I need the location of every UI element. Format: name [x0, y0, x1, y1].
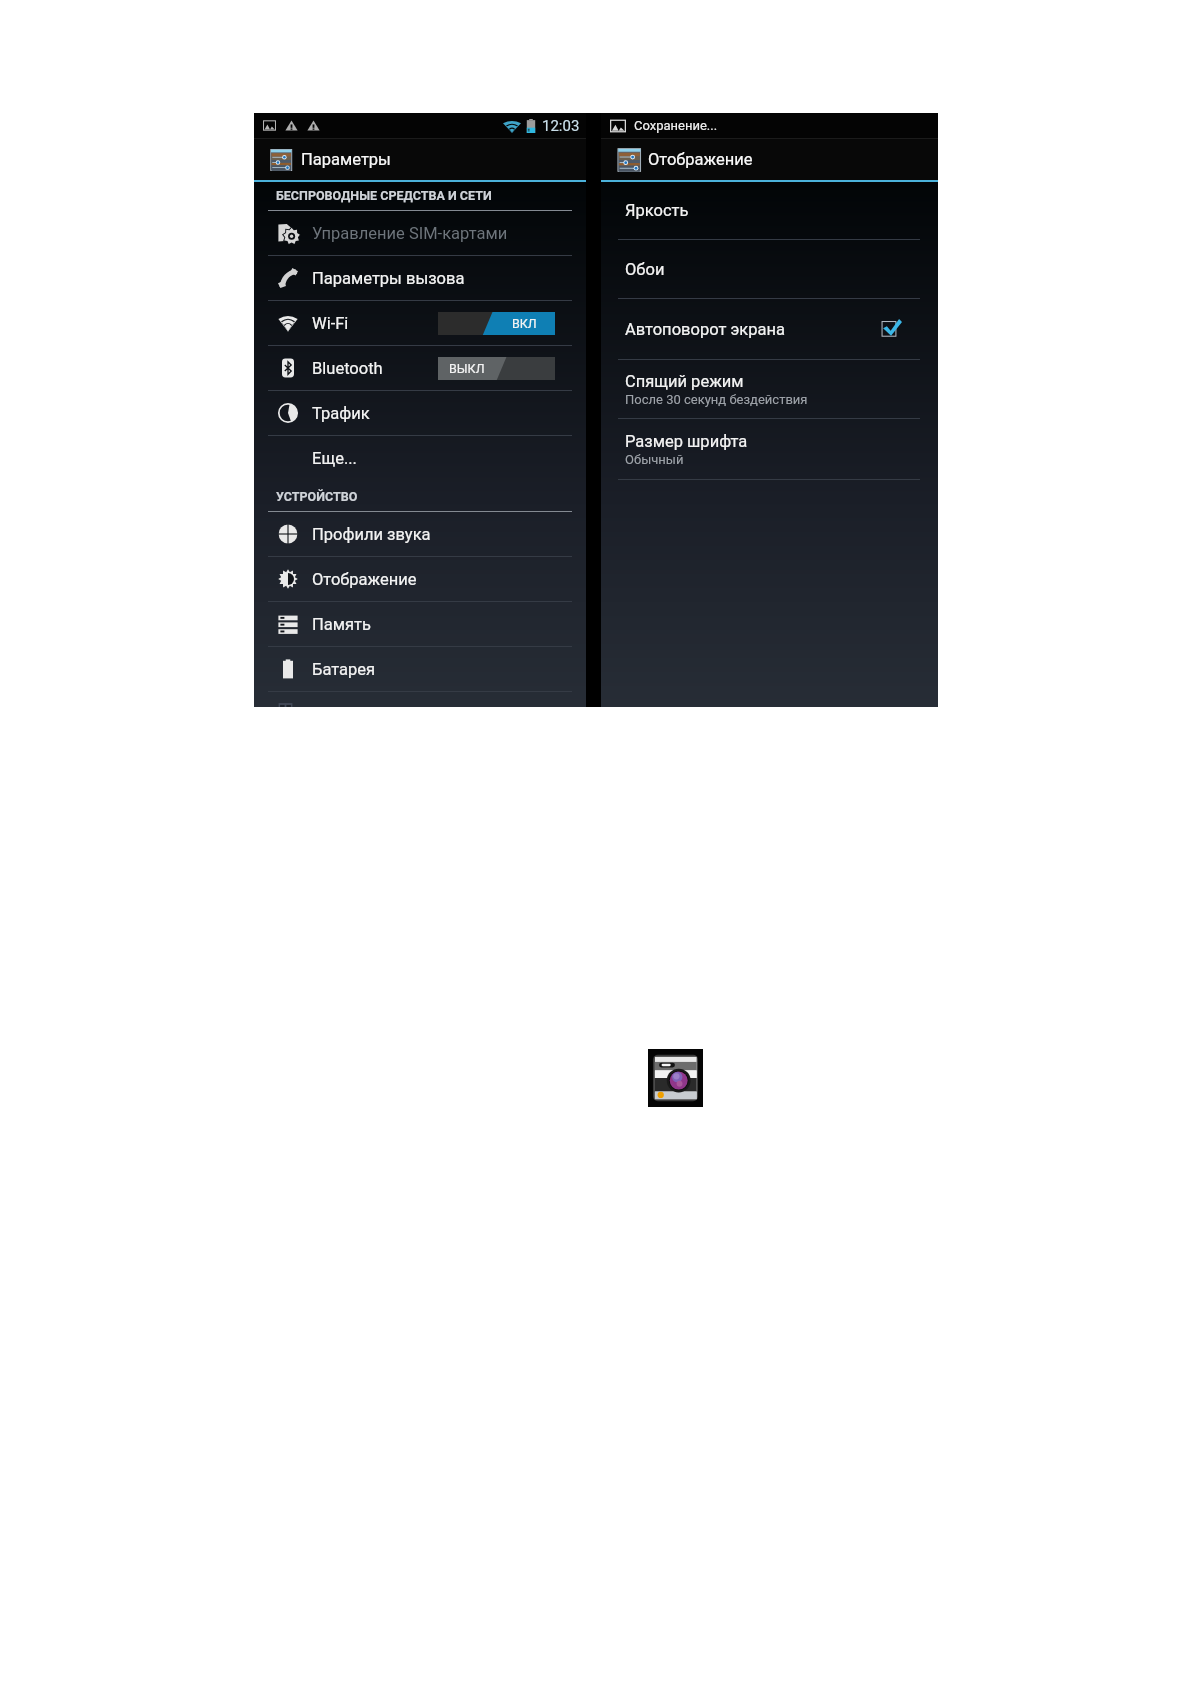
button[interactable]: Профили звука	[254, 512, 586, 556]
staticText: Параметры вызова	[312, 269, 465, 288]
staticText: Яркость	[625, 201, 689, 220]
button[interactable]: Трафик	[254, 391, 586, 435]
staticText: УСТРОЙСТВО	[276, 489, 358, 504]
button[interactable]: Отображение	[254, 557, 586, 601]
staticText: Обои	[625, 260, 665, 279]
staticText: Автоповорот экрана	[625, 320, 785, 339]
staticText: Спящий режим	[625, 372, 744, 391]
button[interactable]: Camera application	[648, 1049, 703, 1107]
button[interactable]: Off	[438, 357, 555, 380]
button[interactable]: Bluetooth	[254, 346, 586, 390]
staticText: Профили звука	[312, 525, 431, 544]
button[interactable]: Auto-rotate screen	[881, 319, 902, 340]
staticText: Размер шрифта	[625, 432, 748, 451]
button[interactable]: Автоповорот экрана	[601, 299, 938, 359]
button[interactable]: On	[438, 312, 555, 335]
staticText: Отображение	[648, 150, 753, 169]
button[interactable]: Обои	[601, 240, 938, 298]
staticText: Еще...	[312, 449, 357, 468]
button[interactable]: Батарея	[254, 647, 586, 691]
staticText: 12:03	[542, 117, 580, 135]
button[interactable]: Спящий режим	[601, 360, 938, 418]
staticText: БЕСПРОВОДНЫЕ СРЕДСТВА И СЕТИ	[276, 188, 492, 203]
button[interactable]: Wi-Fi	[254, 301, 586, 345]
button[interactable]: Память	[254, 602, 586, 646]
button[interactable]: Отображение	[601, 139, 938, 180]
staticText: Память	[312, 615, 371, 634]
button[interactable]: Яркость	[601, 182, 938, 239]
button[interactable]: Параметры вызова	[254, 256, 586, 300]
staticText: Wi-Fi	[312, 314, 349, 333]
staticText: После 30 секунд бездействия	[625, 392, 808, 407]
button[interactable]: Параметры	[254, 139, 586, 180]
button[interactable]: Управление SIM-картами	[254, 211, 586, 255]
button[interactable]: Еще...	[254, 436, 586, 480]
staticText: ВКЛ	[512, 316, 537, 331]
staticText: Bluetooth	[312, 359, 383, 378]
staticText: Обычный	[625, 452, 684, 467]
staticText: Сохранение...	[634, 118, 718, 133]
staticText: Трафик	[312, 404, 370, 423]
staticText: Управление SIM-картами	[312, 224, 508, 243]
staticText: ВЫКЛ	[449, 361, 485, 376]
staticText: Параметры	[301, 150, 391, 169]
staticText: Отображение	[312, 570, 417, 589]
button[interactable]: Размер шрифта	[601, 419, 938, 479]
staticText: Батарея	[312, 660, 376, 679]
